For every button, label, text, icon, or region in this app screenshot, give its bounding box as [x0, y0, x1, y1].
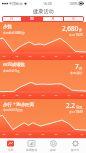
staticText: 2,680	[62, 24, 79, 33]
staticText: 今日目标 6000步	[3, 31, 25, 35]
staticText: 健康活动	[33, 8, 54, 15]
button[interactable]: 周	[22, 16, 42, 22]
button[interactable]: 今日	[0, 139, 21, 153]
staticText: 日	[10, 17, 14, 22]
staticText: 今日 16:30	[69, 33, 83, 37]
staticText: 步行 + 跑步距离	[3, 101, 35, 107]
staticText: 16:30	[43, 1, 52, 6]
button[interactable]: 健康数据	[21, 139, 42, 153]
staticText: 月	[51, 17, 55, 22]
button[interactable]: 月	[43, 16, 63, 22]
staticText: 周	[30, 17, 34, 22]
staticText: 已完成锻炼	[3, 62, 25, 68]
staticText: 步	[79, 28, 83, 32]
staticText: 步数	[3, 24, 12, 30]
staticText: 本周目标 5次	[3, 69, 20, 73]
staticText: 次	[79, 66, 83, 70]
staticText: 100%	[69, 1, 78, 6]
staticText: 年	[72, 17, 76, 22]
button[interactable]: 已完成锻炼	[0, 60, 86, 99]
staticText: 2.2	[66, 101, 76, 110]
staticText: 中国移动	[9, 2, 23, 6]
staticText: 7	[75, 62, 79, 71]
button[interactable]: 步数	[0, 22, 86, 60]
staticText: 本周 共计	[70, 71, 83, 75]
button[interactable]: 来源	[42, 139, 64, 153]
staticText: 健康数据	[26, 148, 38, 152]
staticText: 今日 16:30	[69, 110, 83, 114]
button[interactable]: 步行 + 跑步距离	[0, 99, 86, 138]
button[interactable]: 年	[64, 16, 84, 22]
staticText: 医疗卡	[71, 148, 80, 152]
staticText: 今日目标 3公里	[3, 108, 23, 112]
staticText: 公里	[76, 105, 83, 109]
button[interactable]: 日	[2, 16, 21, 22]
button[interactable]: 医疗卡	[64, 139, 86, 153]
staticText: 来源	[50, 148, 56, 152]
staticText: 今日	[8, 148, 14, 152]
